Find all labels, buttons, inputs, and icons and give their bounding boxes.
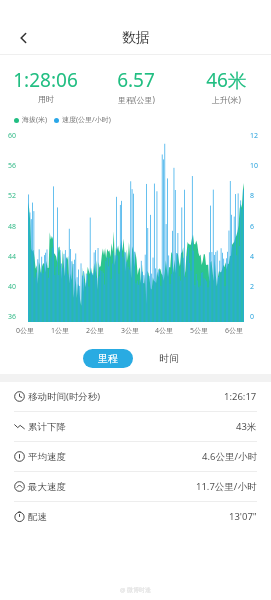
staticText: 6公里 [225,326,244,336]
staticText: 4公里 [155,326,174,336]
staticText: 速度(公里/小时) [62,115,111,125]
staticText: 56 [8,161,17,171]
staticText: 0 [250,312,255,322]
staticText: 13'07" [229,510,257,523]
staticText: 4 [250,252,255,262]
staticText: 上升(米) [212,94,241,105]
staticText: 1:26:17 [224,390,257,403]
staticText: 6.57 [117,67,155,93]
staticText: 1:28:06 [13,67,78,93]
staticText: 8 [250,191,255,201]
staticText: 平均速度 [28,451,66,463]
button[interactable]: 平均速度 [0,442,271,471]
staticText: 时间 [159,352,179,365]
staticText: 11.7公里/小时 [196,480,257,493]
button[interactable]: 累计下降 [0,412,271,441]
staticText: 40 [8,282,17,292]
staticText: 里程(公里) [118,94,155,105]
button[interactable]: 移动时间(时分秒) [0,382,271,411]
staticText: 46米 [206,67,247,93]
staticText: 数据 [122,29,150,47]
button[interactable]: 时间 [149,349,189,368]
button[interactable]: 最大速度 [0,472,271,501]
staticText: 3公里 [121,326,140,336]
staticText: 48 [8,222,17,232]
staticText: 10 [250,161,259,171]
staticText: 43米 [236,420,257,433]
staticText: 累计下降 [28,421,66,433]
button[interactable]: 里程 [83,349,133,368]
staticText: 36 [8,312,17,322]
staticText: 里程 [98,352,118,365]
staticText: 5公里 [190,326,209,336]
staticText: 0公里 [16,326,35,336]
staticText: 12 [250,131,259,141]
staticText: 52 [8,191,17,201]
staticText: 2 [250,282,255,292]
button[interactable]: Back [8,22,40,54]
staticText: @ 微博时逢 [120,586,151,594]
staticText: 配速 [28,511,47,523]
button[interactable]: 配速 [0,502,271,531]
staticText: 6 [250,222,255,232]
staticText: 用时 [38,94,54,104]
staticText: 44 [8,252,17,262]
staticText: 最大速度 [28,481,66,493]
staticText: 海拔(米) [22,115,48,125]
staticText: 1公里 [51,326,70,336]
staticText: 60 [8,131,17,141]
staticText: 2公里 [86,326,105,336]
staticText: 移动时间(时分秒) [28,390,101,403]
staticText: 4.6公里/小时 [202,450,257,463]
